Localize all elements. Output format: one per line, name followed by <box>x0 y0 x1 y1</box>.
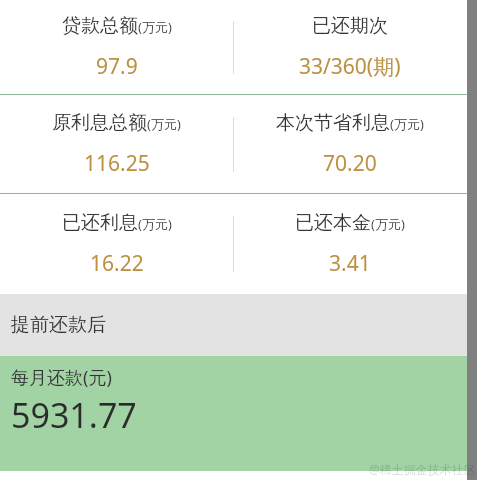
button[interactable]: 原利息总额(万元) <box>52 111 181 178</box>
staticText: 97.9 <box>96 52 138 81</box>
staticText: 70.20 <box>323 149 377 178</box>
staticText: @稀土掘金技术社区 <box>369 461 476 477</box>
button[interactable]: 提前还款后 <box>0 294 467 356</box>
staticText: 已还本金(万元) <box>295 211 405 235</box>
staticText: 5931.77 <box>11 392 137 438</box>
staticText: 16.22 <box>90 249 144 278</box>
button[interactable]: 本次节省利息(万元) <box>276 111 424 178</box>
staticText: 每月还款(元) <box>11 365 112 390</box>
staticText: 本次节省利息(万元) <box>276 111 424 135</box>
button[interactable]: 已还利息(万元) <box>62 211 172 278</box>
button[interactable]: 贷款总额(万元) <box>62 14 172 81</box>
button[interactable]: 已还期次 <box>299 14 401 81</box>
staticText: 提前还款后 <box>11 313 106 337</box>
staticText: 3.41 <box>329 249 371 278</box>
staticText: 贷款总额(万元) <box>62 14 172 38</box>
staticText: 33/360(期) <box>299 52 401 81</box>
staticText: 已还期次 <box>312 14 388 38</box>
staticText: 原利息总额(万元) <box>52 111 181 135</box>
button[interactable]: 已还本金(万元) <box>295 211 405 278</box>
staticText: 已还利息(万元) <box>62 211 172 235</box>
button[interactable]: 每月还款(元) <box>0 356 467 471</box>
staticText: 116.25 <box>84 149 150 178</box>
